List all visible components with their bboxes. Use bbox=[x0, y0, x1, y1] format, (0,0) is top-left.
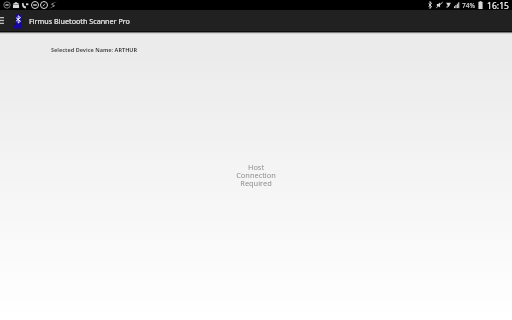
staticText: 74% bbox=[462, 1, 476, 10]
button[interactable]: Open navigation menu bbox=[0, 10, 9, 31]
staticText: 16:15 bbox=[487, 0, 509, 10]
staticText: Host Connection Required bbox=[236, 162, 276, 188]
staticText: Firmus Bluetooth Scanner Pro bbox=[29, 16, 130, 26]
staticText: Selected Device Name: ARTHUR bbox=[51, 46, 138, 53]
